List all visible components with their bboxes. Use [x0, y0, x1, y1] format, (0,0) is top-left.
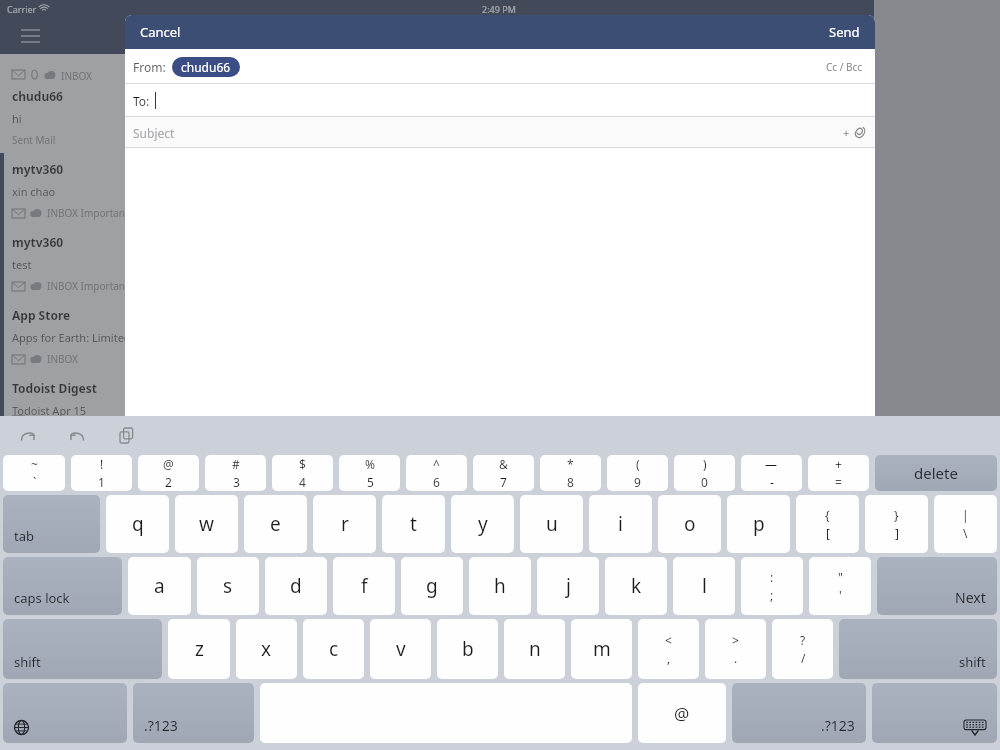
button[interactable]: Undo	[13, 421, 41, 449]
button[interactable]: shift	[3, 619, 162, 679]
button[interactable]: a	[128, 557, 191, 615]
button[interactable]: To:	[125, 84, 875, 117]
button[interactable]: c	[303, 619, 364, 679]
button[interactable]: {	[796, 495, 859, 553]
button[interactable]: "	[809, 557, 871, 615]
button[interactable]: %	[339, 455, 400, 491]
button[interactable]: Subject	[125, 117, 875, 148]
button[interactable]: }	[865, 495, 928, 553]
button[interactable]: s	[197, 557, 259, 615]
button[interactable]: v	[370, 619, 431, 679]
staticText: ~	[31, 456, 38, 472]
button[interactable]: shift	[839, 619, 997, 679]
button[interactable]: t	[382, 495, 445, 553]
button[interactable]: $	[272, 455, 333, 491]
button[interactable]: |	[934, 495, 997, 553]
button[interactable]: App Store	[0, 299, 1000, 372]
button[interactable]: Send	[818, 16, 871, 48]
button[interactable]: tab	[3, 495, 100, 553]
button[interactable]: j	[537, 557, 599, 615]
button[interactable]: n	[504, 619, 565, 679]
button[interactable]: .?123	[133, 683, 254, 743]
button[interactable]: chudu66	[172, 57, 240, 77]
button[interactable]: Menu	[12, 18, 48, 54]
staticText: o	[684, 511, 696, 537]
button[interactable]: q	[106, 495, 169, 553]
staticText: {	[825, 507, 830, 523]
button[interactable]: delete	[875, 455, 997, 491]
button[interactable]: e	[244, 495, 307, 553]
button[interactable]: b	[437, 619, 498, 679]
button[interactable]: )	[674, 455, 735, 491]
staticText: t	[410, 511, 417, 537]
staticText: n	[529, 636, 541, 662]
button[interactable]: Paste	[113, 421, 141, 449]
button[interactable]: :	[741, 557, 803, 615]
staticText: chudu66	[181, 59, 231, 75]
button[interactable]: chudu66	[0, 80, 1000, 153]
button[interactable]: ?	[772, 619, 833, 679]
button[interactable]: #	[205, 455, 266, 491]
staticText: x	[261, 636, 272, 662]
staticText: :	[770, 569, 774, 585]
button[interactable]: Change language	[3, 683, 127, 743]
button[interactable]: !	[71, 455, 132, 491]
button[interactable]: <	[638, 619, 699, 679]
staticText: #	[232, 456, 240, 472]
button[interactable]: *	[540, 455, 601, 491]
staticText: (	[636, 456, 640, 472]
staticText: .	[734, 650, 738, 666]
button[interactable]: INBOX	[0, 54, 1000, 80]
button[interactable]: —	[741, 455, 802, 491]
button[interactable]: g	[401, 557, 463, 615]
staticText: .?123	[144, 716, 178, 735]
button[interactable]: Attach file	[851, 124, 868, 141]
staticText: ,	[667, 650, 671, 666]
button[interactable]: d	[265, 557, 327, 615]
button[interactable]: f	[333, 557, 395, 615]
button[interactable]: .?123	[732, 683, 866, 743]
button[interactable]: m	[571, 619, 632, 679]
button[interactable]: Todoist Digest	[0, 372, 1000, 416]
button[interactable]: p	[727, 495, 790, 553]
staticText: hi	[12, 111, 22, 126]
staticText: q	[132, 511, 144, 537]
button[interactable]: x	[236, 619, 297, 679]
button[interactable]: z	[168, 619, 230, 679]
button[interactable]: Cancel	[129, 16, 192, 48]
button[interactable]: ~	[3, 455, 65, 491]
staticText: 2	[165, 474, 172, 490]
button[interactable]: Hide keyboard	[872, 683, 997, 743]
button[interactable]: w	[175, 495, 238, 553]
staticText: 3	[233, 474, 240, 490]
staticText: >	[732, 632, 739, 648]
button[interactable]: u	[520, 495, 583, 553]
button[interactable]: +	[808, 455, 869, 491]
button[interactable]: Redo	[63, 421, 91, 449]
button[interactable]: o	[658, 495, 721, 553]
button[interactable]: caps lock	[3, 557, 122, 615]
button[interactable]: (	[607, 455, 668, 491]
button[interactable]: @	[138, 455, 199, 491]
button[interactable]: y	[451, 495, 514, 553]
staticText: '	[839, 587, 842, 603]
button[interactable]: mytv360	[0, 226, 1000, 299]
button[interactable]: l	[673, 557, 735, 615]
button[interactable]: >	[705, 619, 766, 679]
button[interactable]: r	[313, 495, 376, 553]
button[interactable]: @	[638, 683, 726, 743]
button[interactable]: h	[469, 557, 531, 615]
staticText: ^	[433, 456, 440, 472]
button[interactable]: i	[589, 495, 652, 553]
button[interactable]: &	[473, 455, 534, 491]
button[interactable]: mytv360	[0, 153, 1000, 226]
staticText: +	[835, 456, 842, 472]
staticText: g	[426, 573, 438, 599]
staticText: h	[494, 573, 506, 599]
button[interactable]: Cc / Bcc	[822, 56, 867, 78]
button[interactable]: ^	[406, 455, 467, 491]
button[interactable]: Next	[877, 557, 997, 615]
button[interactable]: k	[605, 557, 667, 615]
